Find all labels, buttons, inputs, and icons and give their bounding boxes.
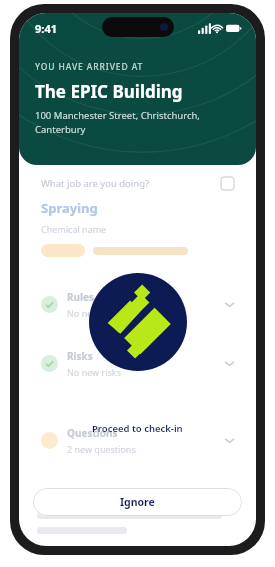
button[interactable]: Risks: [29, 338, 246, 389]
staticText: No new rules: [67, 307, 123, 319]
staticText: Risks: [67, 349, 93, 363]
button[interactable]: Ignore: [33, 488, 242, 516]
staticText: Ignore: [120, 495, 155, 509]
staticText: YOU HAVE ARRIVED AT: [35, 61, 144, 73]
other: App logo: [89, 273, 187, 371]
staticText: Rules: [67, 290, 95, 304]
staticText: Proceed to check-in: [92, 422, 183, 435]
staticText: 9:41: [35, 21, 57, 36]
button[interactable]: Rules: [29, 279, 246, 330]
staticText: No new risks: [67, 366, 121, 378]
staticText: Questions: [67, 426, 118, 440]
staticText: What job are you doing?: [41, 177, 150, 190]
button[interactable]: Questions: [29, 415, 246, 466]
staticText: Chemical name: [41, 223, 107, 235]
staticText: Spraying: [41, 199, 98, 217]
staticText: The EPIC Building: [35, 80, 183, 103]
staticText: 100 Manchester Street, Christchurch, Can…: [35, 109, 200, 136]
staticText: 2 new questions: [67, 443, 136, 455]
button[interactable]: What job are you doing?: [29, 165, 246, 269]
button[interactable]: Proceed to check-in: [19, 422, 256, 435]
